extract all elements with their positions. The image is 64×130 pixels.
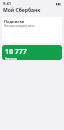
staticText: Выгода каждый день bbox=[4, 24, 35, 28]
button[interactable]: Подписка bbox=[2, 17, 62, 43]
staticText: 10 777 bbox=[5, 47, 27, 57]
button[interactable]: 10 777 bbox=[2, 45, 62, 60]
staticText: 9:41 bbox=[3, 1, 11, 6]
staticText: бонусов bbox=[5, 57, 17, 60]
staticText: ▮▮▮ bbox=[56, 2, 61, 5]
staticText: Подписка bbox=[4, 19, 25, 24]
staticText: Мой Сбербанк bbox=[3, 7, 41, 14]
